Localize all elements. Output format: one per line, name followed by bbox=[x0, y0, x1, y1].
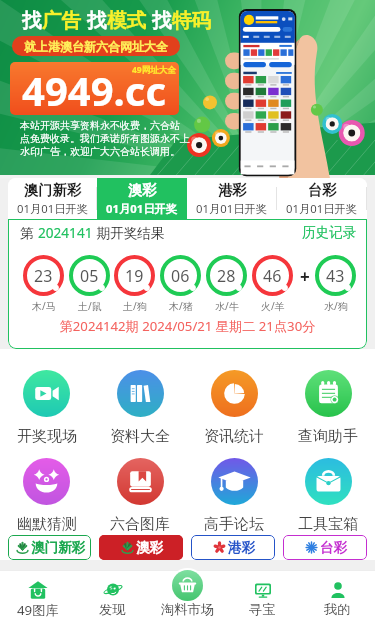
staticText: 28 bbox=[217, 265, 236, 287]
staticText: 49图库 bbox=[17, 601, 59, 619]
button[interactable]: 港彩 bbox=[191, 535, 275, 560]
staticText: 港彩 bbox=[228, 539, 255, 556]
button[interactable]: 澳门新彩 bbox=[8, 178, 97, 219]
staticText: 第2024142期 2024/05/21 星期二 21点30分 bbox=[8, 317, 367, 335]
staticText: 木/马 bbox=[32, 299, 56, 313]
staticText: + bbox=[300, 265, 310, 281]
staticText: 澳门新彩 bbox=[31, 539, 85, 556]
staticText: 我的 bbox=[324, 601, 351, 618]
button[interactable]: 发现 bbox=[75, 560, 150, 619]
button[interactable]: 高手论坛 bbox=[187, 458, 281, 534]
staticText: 澳彩 bbox=[128, 181, 157, 199]
staticText: 台彩 bbox=[308, 181, 337, 199]
button[interactable]: 开奖现场 bbox=[0, 370, 93, 446]
staticText: 发现 bbox=[99, 601, 126, 618]
staticText: 高手论坛 bbox=[204, 515, 264, 534]
button[interactable]: 49图库 bbox=[0, 560, 75, 619]
staticText: 本站开源共享资料永不收费，六合站 bbox=[20, 119, 180, 132]
staticText: 资讯统计 bbox=[204, 427, 264, 446]
staticText: 水/牛 bbox=[215, 299, 239, 313]
button[interactable]: 28 bbox=[206, 255, 247, 313]
staticText: 找 bbox=[152, 8, 172, 33]
button[interactable]: 19 bbox=[114, 255, 155, 313]
button[interactable]: 寻宝 bbox=[225, 560, 300, 619]
staticText: 土/狗 bbox=[123, 299, 147, 313]
staticText: 05 bbox=[80, 265, 99, 287]
staticText: 01月01日开奖 bbox=[286, 201, 358, 216]
staticText: 找 bbox=[22, 8, 42, 33]
staticText: 水印广告，欢迎广大六合站长调用。 bbox=[20, 145, 180, 158]
staticText: 01月01日开奖 bbox=[17, 201, 89, 216]
button[interactable]: 幽默猜测 bbox=[0, 458, 93, 534]
staticText: 资料大全 bbox=[110, 427, 170, 446]
staticText: 点免费收录。我们承诺所有图源永不上 bbox=[20, 132, 190, 145]
button[interactable]: 历史记录 bbox=[302, 224, 357, 241]
button[interactable]: 05 bbox=[69, 255, 110, 313]
other: Market bbox=[172, 570, 203, 601]
staticText: 工具宝箱 bbox=[298, 515, 358, 534]
staticText: 土/鼠 bbox=[78, 299, 102, 313]
staticText: 01月01日开奖 bbox=[196, 201, 268, 216]
button[interactable]: 06 bbox=[160, 255, 201, 313]
button[interactable]: 港彩 bbox=[187, 178, 277, 219]
staticText: 寻宝 bbox=[249, 601, 276, 618]
staticText: 19 bbox=[125, 265, 144, 287]
button[interactable]: 找 bbox=[0, 0, 375, 175]
staticText: 查询助手 bbox=[298, 427, 358, 446]
staticText: 淘料市场 bbox=[161, 601, 215, 618]
button[interactable]: Market bbox=[150, 560, 225, 619]
button[interactable]: 台彩 bbox=[277, 178, 367, 219]
staticText: 2024141 bbox=[38, 223, 93, 242]
button[interactable]: 澳门新彩 bbox=[8, 535, 91, 560]
staticText: 01月01日开奖 bbox=[106, 201, 178, 216]
button[interactable]: 工具宝箱 bbox=[281, 458, 375, 534]
staticText: 开奖现场 bbox=[17, 427, 77, 446]
staticText: 49网址大全 bbox=[132, 64, 176, 76]
staticText: 澳彩 bbox=[136, 539, 163, 556]
staticText: 4949.cc bbox=[22, 63, 167, 115]
button[interactable]: 澳彩 bbox=[99, 535, 183, 560]
staticText: 台彩 bbox=[320, 539, 347, 556]
button[interactable]: 资讯统计 bbox=[187, 370, 281, 446]
staticText: 木/猪 bbox=[169, 299, 193, 313]
staticText: 第 bbox=[20, 223, 38, 242]
staticText: 06 bbox=[171, 265, 190, 287]
button[interactable]: 澳彩 bbox=[97, 178, 187, 219]
staticText: 水/狗 bbox=[324, 299, 348, 313]
button[interactable]: 台彩 bbox=[283, 535, 367, 560]
staticText: 找 bbox=[87, 8, 107, 33]
staticText: 特码 bbox=[172, 8, 211, 33]
button[interactable]: 46 bbox=[252, 255, 293, 313]
staticText: 六合图库 bbox=[110, 515, 170, 534]
staticText: 43 bbox=[326, 265, 345, 287]
button[interactable]: 我的 bbox=[300, 560, 375, 619]
staticText: 46 bbox=[263, 265, 282, 287]
staticText: 模式 bbox=[107, 8, 146, 33]
staticText: 23 bbox=[34, 265, 53, 287]
button[interactable]: 23 bbox=[23, 255, 64, 313]
staticText: 就上港澳台新六合网址大全 bbox=[24, 39, 168, 54]
button[interactable]: 43 bbox=[315, 255, 356, 313]
button[interactable]: 资料大全 bbox=[93, 370, 187, 446]
staticText: 幽默猜测 bbox=[17, 515, 77, 534]
button[interactable]: 六合图库 bbox=[93, 458, 187, 534]
staticText: 澳门新彩 bbox=[24, 181, 82, 199]
staticText: 期开奖结果 bbox=[93, 223, 165, 242]
button[interactable]: 查询助手 bbox=[281, 370, 375, 446]
staticText: 广告 bbox=[42, 8, 81, 33]
staticText: 港彩 bbox=[218, 181, 247, 199]
staticText: 火/羊 bbox=[261, 299, 285, 313]
